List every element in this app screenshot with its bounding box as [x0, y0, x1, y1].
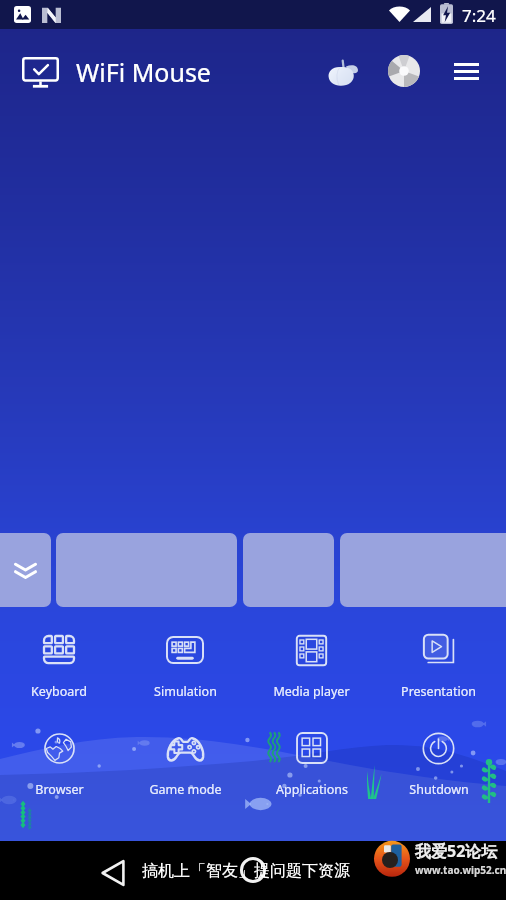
button[interactable]: Browser	[0, 731, 122, 798]
button[interactable]: Download server	[383, 50, 425, 92]
staticText: 搞机上「智友」提问题下资源	[142, 861, 350, 881]
staticText: www.tao.wip52.cn	[415, 863, 506, 877]
button[interactable]: Connected computer	[18, 52, 62, 92]
button[interactable]: Show more	[0, 533, 51, 607]
button[interactable]: Menu	[445, 50, 487, 92]
button[interactable]: Keyboard	[0, 633, 122, 700]
button[interactable]: Applications	[248, 731, 375, 798]
button[interactable]: Back	[95, 855, 131, 891]
button[interactable]: Presentation	[375, 633, 502, 700]
staticText: Media player	[273, 683, 350, 700]
staticText: Game mode	[149, 781, 222, 798]
staticText: Simulation	[154, 683, 217, 700]
button[interactable]: Game mode	[122, 731, 248, 798]
button[interactable]	[340, 533, 506, 607]
button[interactable]: Download for Mac	[322, 51, 364, 93]
button[interactable]: Simulation	[122, 633, 248, 700]
button[interactable]	[243, 533, 334, 607]
staticText: WiFi Mouse	[76, 55, 211, 89]
staticText: Presentation	[401, 683, 476, 700]
button[interactable]: Media player	[248, 633, 375, 700]
staticText: Browser	[35, 781, 84, 798]
staticText: Shutdown	[409, 781, 469, 798]
button[interactable]: Home	[235, 852, 271, 888]
button[interactable]: Shutdown	[375, 731, 502, 798]
staticText: Applications	[276, 781, 348, 798]
staticText: Keyboard	[31, 683, 87, 700]
staticText: 我爱52论坛	[415, 840, 498, 862]
button[interactable]	[56, 533, 237, 607]
staticText: 7:24	[462, 4, 496, 27]
